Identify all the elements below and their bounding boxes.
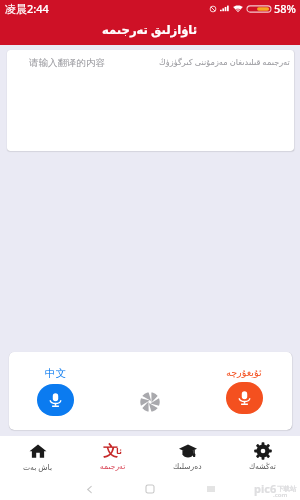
staticText: ئا — [116, 447, 123, 456]
staticText: 请输入翻译的内容 — [29, 57, 105, 69]
button[interactable]: Camera translate — [137, 389, 163, 415]
button[interactable]: 中文 — [28, 367, 82, 416]
staticText: تەڭشەك — [249, 462, 276, 471]
button[interactable]: Back — [81, 481, 97, 497]
button[interactable]: ئۇيغۇرچە — [217, 367, 271, 414]
staticText: 凌晨2:44 — [5, 1, 49, 16]
button[interactable]: Recents — [203, 481, 219, 497]
staticText: باش بەت — [23, 462, 53, 472]
button[interactable]: باش بەت — [0, 442, 75, 472]
staticText: 中文 — [45, 367, 66, 380]
staticText: تەرجىمە — [100, 462, 126, 471]
staticText: 文 — [103, 442, 118, 459]
staticText: ئۇيغۇرچە — [226, 367, 262, 378]
staticText: دەرسلىك — [173, 462, 202, 471]
button[interactable]: دەرسلىك — [150, 442, 225, 471]
button[interactable]: 请输入翻译的内容 — [7, 50, 294, 151]
button[interactable]: Home — [142, 481, 158, 497]
staticText: 下载站 — [277, 485, 297, 493]
staticText: 58% — [274, 1, 296, 16]
staticText: تەرجىمە قىلىدىغان مەزمۇننى كىرگۈزۈڭ — [159, 56, 290, 67]
button[interactable]: 文 — [75, 443, 150, 471]
staticText: ئاۋازلىق تەرجىمە — [102, 22, 198, 38]
button[interactable]: تەڭشەك — [225, 442, 300, 471]
staticText: .com — [273, 491, 288, 499]
staticText: pic6 — [254, 481, 277, 496]
